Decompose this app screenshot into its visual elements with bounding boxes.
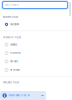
staticText: Assignee: [10, 43, 17, 46]
button[interactable]: Attachment: [0, 49, 72, 57]
staticText: Attachment: [10, 52, 21, 54]
staticText: Fix versions: [10, 69, 20, 71]
staticText: COMMON FIELDS: [3, 36, 21, 39]
button[interactable]: Fix versions: [0, 66, 72, 74]
staticText: Choose fields to set on: [8, 94, 29, 97]
staticText: SELECTED FIELDS: [3, 16, 18, 18]
button[interactable]: Type to search: [1, 0, 69, 10]
staticText: Description: [10, 23, 19, 26]
staticText: Due date: [10, 60, 18, 63]
button[interactable]: Assignee: [0, 41, 72, 48]
button[interactable]: Description: [0, 21, 72, 28]
staticText: Type to search: [4, 4, 18, 6]
button[interactable]: Choose fields to set on: [0, 91, 46, 100]
staticText: AVAILABLE FIELDS: [3, 81, 19, 84]
button[interactable]: Due date: [0, 58, 72, 65]
